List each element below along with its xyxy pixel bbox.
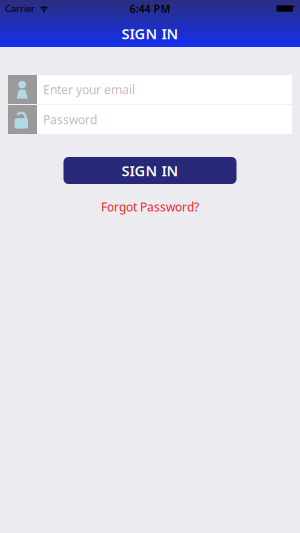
staticText: Carrier: [5, 2, 35, 15]
button[interactable]: Password: [8, 105, 292, 134]
staticText: Password: [43, 111, 97, 127]
staticText: Forgot Password?: [101, 199, 199, 215]
staticText: Enter your email: [43, 81, 135, 97]
button[interactable]: Forgot Password?: [101, 199, 199, 215]
button[interactable]: SIGN IN: [63, 157, 236, 184]
staticText: 6:44 PM: [129, 1, 170, 16]
staticText: SIGN IN: [121, 161, 178, 180]
button[interactable]: Enter your email: [8, 75, 292, 104]
staticText: SIGN IN: [121, 24, 178, 43]
